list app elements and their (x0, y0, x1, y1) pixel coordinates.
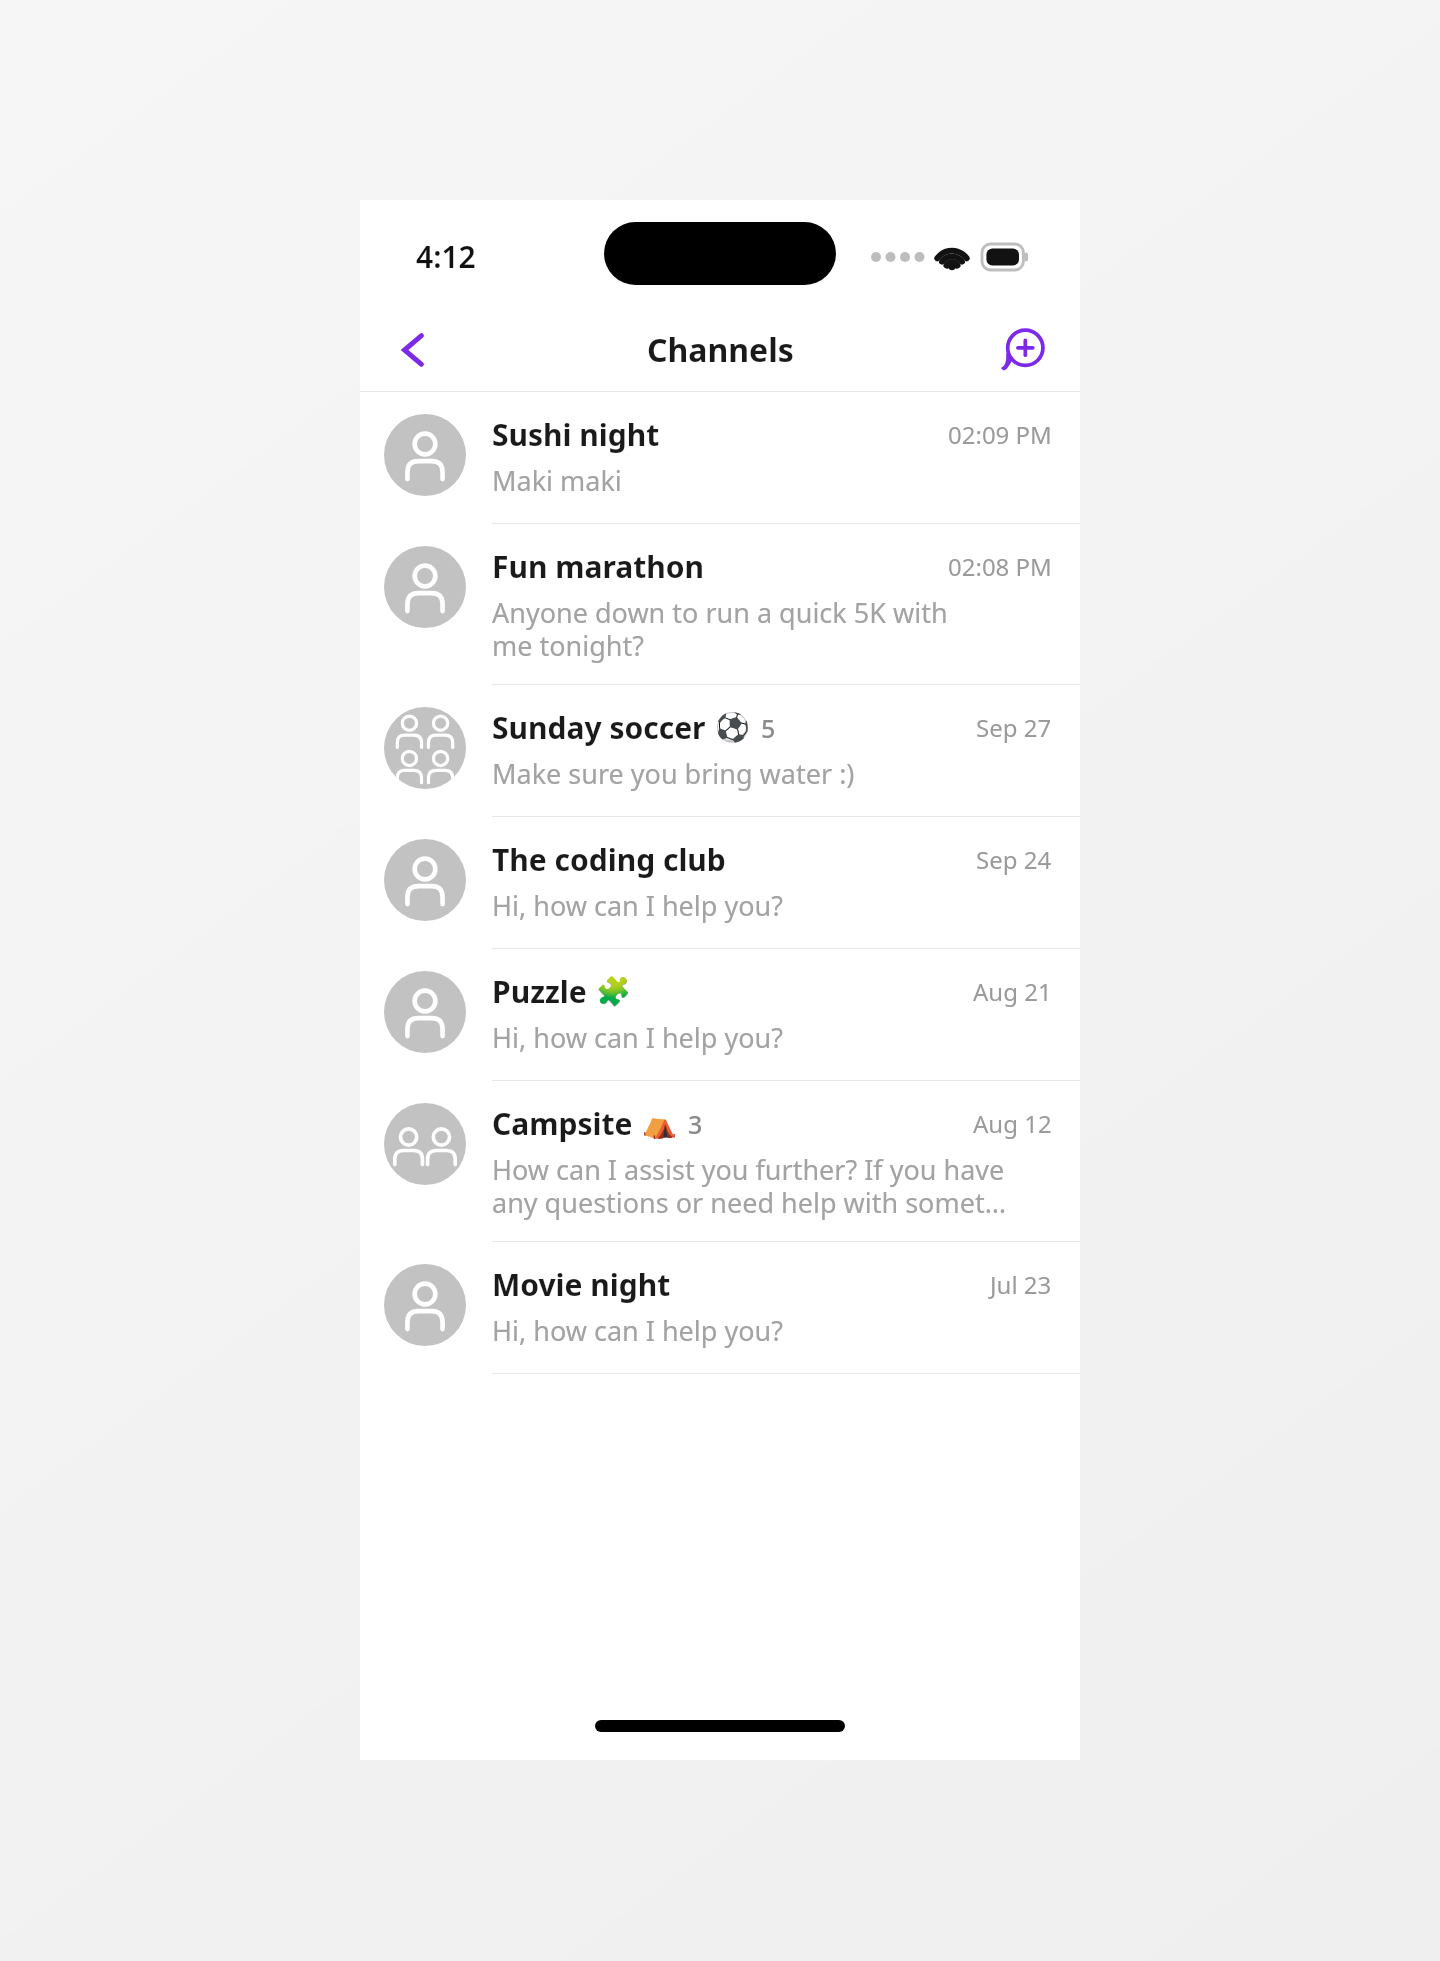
staticText: Puzzle (492, 971, 587, 1012)
staticText: Fun marathon (492, 546, 705, 587)
staticText: Sushi night (492, 414, 660, 455)
staticText: 🧩 (596, 975, 631, 1008)
staticText: Maki maki (492, 462, 622, 499)
button[interactable]: Fun marathon (360, 524, 1080, 685)
button[interactable]: Sushi night (360, 392, 1080, 524)
staticText: Channels (647, 328, 794, 372)
staticText: 5 (761, 711, 776, 745)
staticText: Jul 23 (990, 1268, 1052, 1301)
button[interactable]: Sunday soccer (360, 685, 1080, 817)
staticText: Campsite (492, 1103, 633, 1144)
staticText: ⛺ (642, 1107, 677, 1140)
staticText: Hi, how can I help you? (492, 887, 783, 924)
staticText: Sep 27 (976, 711, 1052, 744)
staticText: Anyone down to run a quick 5K with me to… (492, 594, 948, 664)
staticText: Make sure you bring water :) (492, 755, 855, 792)
staticText: ⚽ (715, 711, 750, 744)
staticText: Hi, how can I help you? (492, 1019, 783, 1056)
button[interactable]: Campsite (360, 1081, 1080, 1242)
staticText: 4:12 (416, 236, 476, 277)
staticText: Sunday soccer (492, 707, 706, 748)
staticText: Sep 24 (976, 843, 1052, 876)
staticText: The coding club (492, 839, 726, 880)
staticText: Aug 12 (973, 1107, 1052, 1140)
staticText: 02:09 PM (948, 418, 1052, 451)
button[interactable]: Movie night (360, 1242, 1080, 1374)
staticText: Hi, how can I help you? (492, 1312, 783, 1349)
staticText: How can I assist you further? If you hav… (492, 1151, 1020, 1221)
button[interactable]: The coding club (360, 817, 1080, 949)
staticText: 3 (688, 1107, 703, 1141)
button[interactable]: New channel (992, 318, 1056, 382)
staticText: Aug 21 (973, 975, 1052, 1008)
staticText: Movie night (492, 1264, 671, 1305)
staticText: 02:08 PM (948, 550, 1052, 583)
button[interactable]: Puzzle (360, 949, 1080, 1081)
button[interactable]: Back (382, 318, 446, 382)
